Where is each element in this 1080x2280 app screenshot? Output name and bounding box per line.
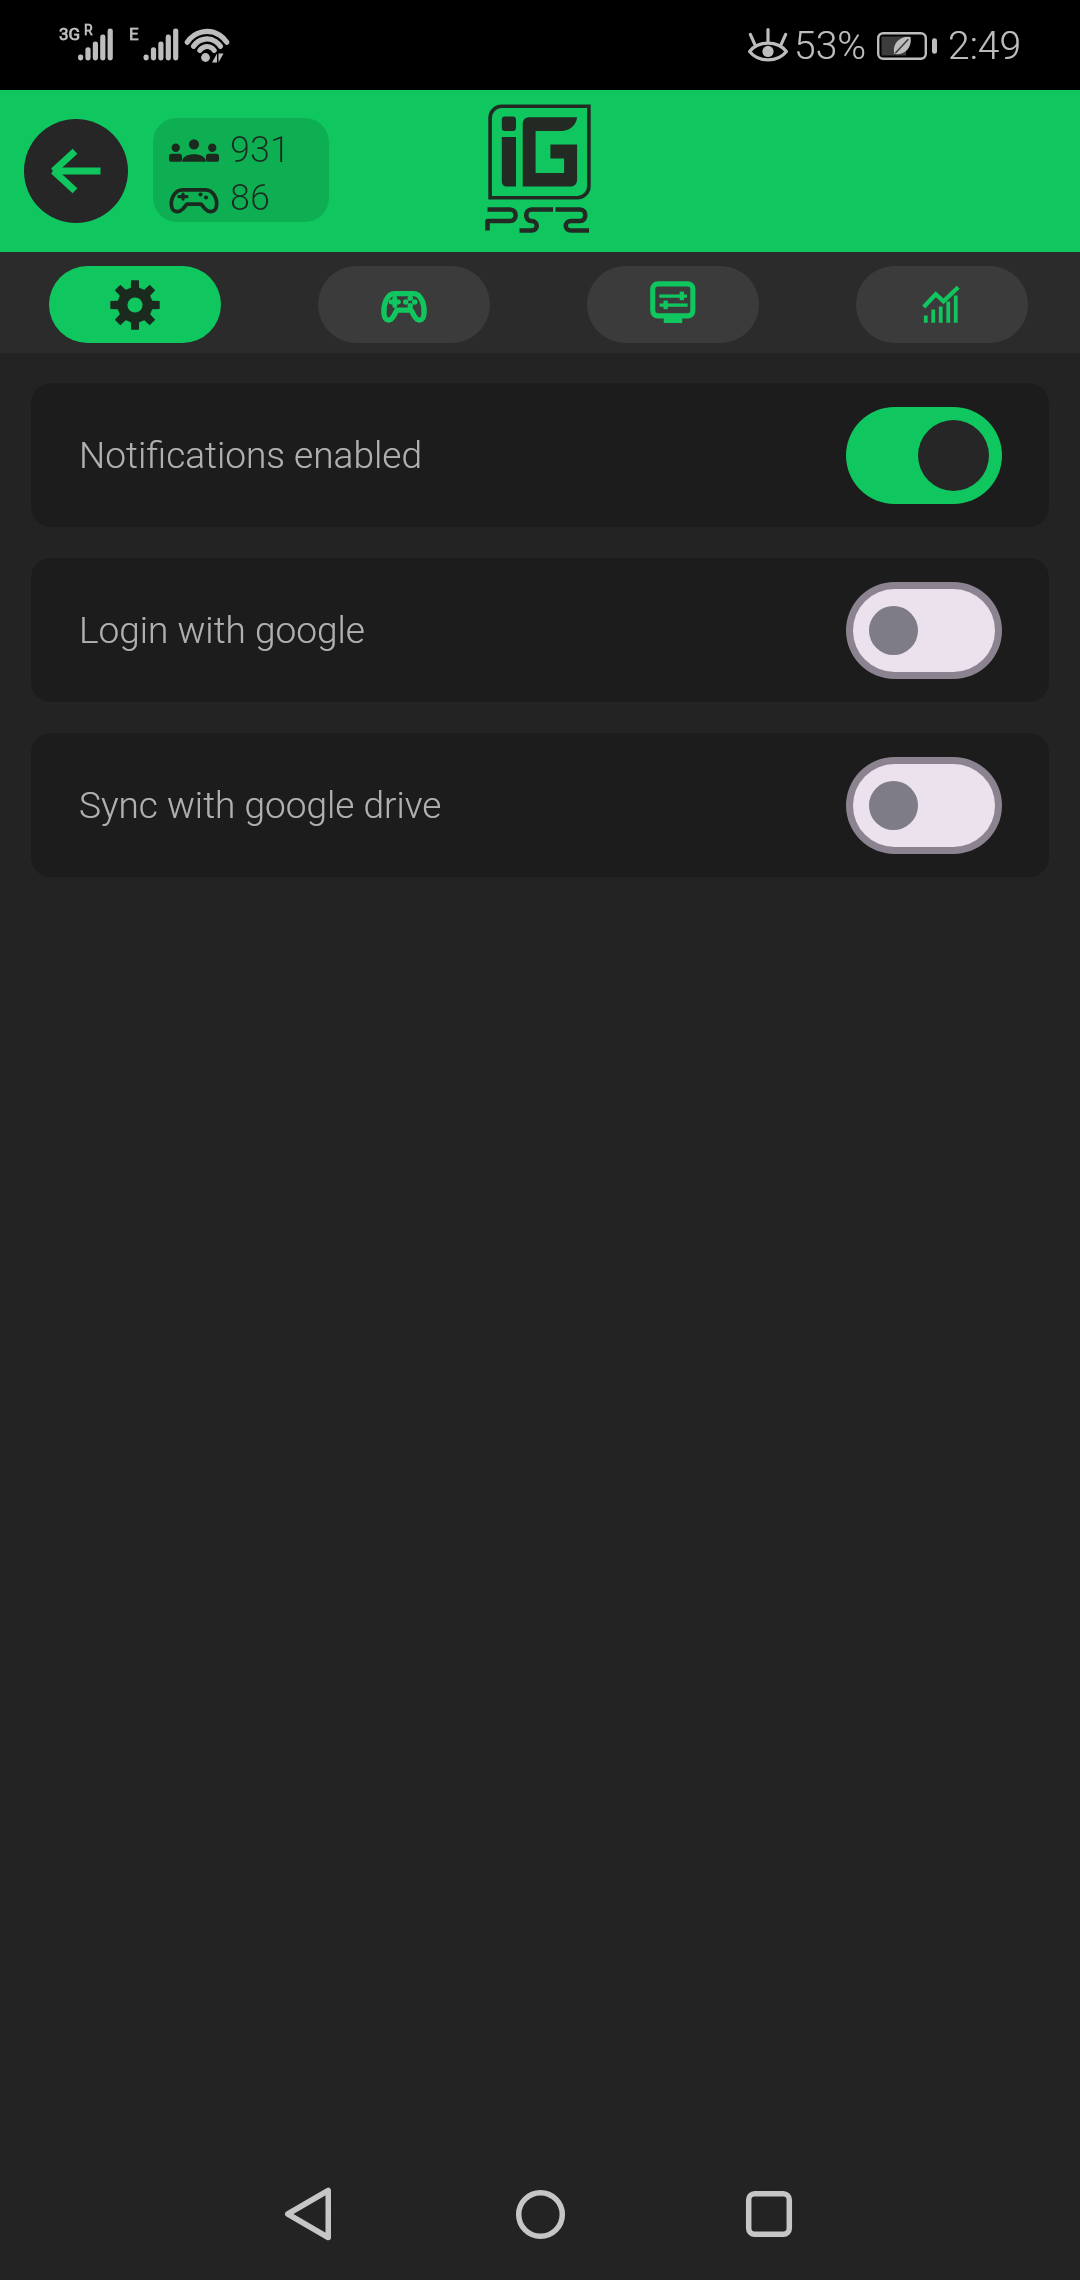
staticText: 53%: [794, 23, 867, 69]
staticText: 2:49: [948, 23, 1022, 69]
button[interactable]: Toggle off: [846, 757, 1002, 854]
button[interactable]: Cheats: [587, 266, 759, 343]
button[interactable]: Recent apps: [724, 2169, 814, 2259]
staticText: Notifications enabled: [79, 434, 422, 477]
button[interactable]: Stats: [856, 266, 1028, 343]
button[interactable]: Back: [24, 119, 128, 223]
staticText: E: [129, 24, 139, 44]
button[interactable]: Notifications enabled: [31, 383, 1049, 527]
button[interactable]: Login with google: [31, 558, 1049, 702]
button[interactable]: Settings: [49, 266, 221, 343]
button[interactable]: Games: [318, 266, 490, 343]
staticText: Login with google: [79, 609, 365, 652]
staticText: Sync with google drive: [79, 784, 442, 827]
staticText: 3G: [59, 24, 81, 44]
button[interactable]: Sync with google drive: [31, 733, 1049, 877]
staticText: R: [84, 22, 93, 38]
staticText: 931: [230, 129, 290, 171]
button[interactable]: Toggle off: [846, 582, 1002, 679]
button[interactable]: 931: [153, 118, 329, 222]
button[interactable]: Toggle on: [846, 407, 1002, 504]
staticText: 86: [230, 177, 270, 219]
button[interactable]: Home: [495, 2169, 585, 2259]
button[interactable]: Back: [263, 2169, 353, 2259]
